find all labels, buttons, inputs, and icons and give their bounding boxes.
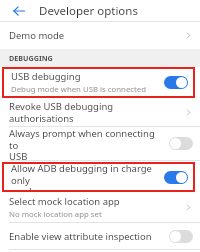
button[interactable]: Back — [11, 3, 27, 19]
staticText: DEBUGGING — [9, 53, 53, 63]
button[interactable]: Always prompt when connecting to USB — [0, 127, 200, 160]
staticText: Revoke USB debugging authorisations — [9, 100, 179, 125]
button[interactable] — [169, 137, 193, 150]
button[interactable] — [164, 76, 188, 89]
button[interactable]: Enable view attribute inspection — [0, 223, 200, 249]
staticText: USB debugging — [11, 70, 81, 83]
button[interactable] — [169, 230, 193, 243]
staticText: Developer options — [39, 3, 138, 19]
staticText: Allow ADB debugging in charge only mode — [11, 162, 159, 192]
button[interactable] — [164, 171, 188, 184]
staticText: No mock location app set — [9, 209, 102, 220]
staticText: Select mock location app — [9, 195, 120, 208]
staticText: Demo mode — [9, 29, 65, 42]
button[interactable]: USB debugging — [2, 67, 195, 98]
staticText: Always prompt when connecting to USB — [9, 127, 164, 160]
staticText: Debug mode when USB is connected — [11, 84, 147, 95]
button[interactable]: Select mock location app — [0, 192, 200, 222]
button[interactable]: Demo mode — [0, 22, 200, 49]
button[interactable]: Revoke USB debugging authorisations — [0, 98, 200, 126]
button[interactable]: Allow ADB debugging in charge only mode — [2, 162, 195, 192]
staticText: Enable view attribute inspection — [9, 230, 152, 243]
